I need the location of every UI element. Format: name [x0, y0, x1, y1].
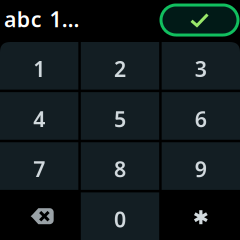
- button[interactable]: Delete: [0, 192, 78, 240]
- button[interactable]: 4: [0, 92, 78, 140]
- staticText: 8: [114, 155, 126, 183]
- staticText: 4: [33, 105, 45, 133]
- button[interactable]: Confirm: [161, 6, 238, 36]
- button[interactable]: 1: [0, 42, 78, 90]
- button[interactable]: 0: [81, 192, 159, 240]
- staticText: 1: [33, 55, 45, 83]
- staticText: 7: [33, 155, 45, 183]
- button[interactable]: 3: [162, 42, 240, 90]
- button[interactable]: 7: [0, 142, 78, 190]
- button[interactable]: 9: [162, 142, 240, 190]
- staticText: 9: [195, 155, 207, 183]
- staticText: 6: [195, 105, 207, 133]
- button[interactable]: 6: [162, 92, 240, 140]
- button[interactable]: Asterisk: [162, 192, 240, 240]
- staticText: 3: [195, 55, 207, 83]
- button[interactable]: 8: [81, 142, 159, 190]
- staticText: 0: [114, 205, 126, 233]
- button[interactable]: 2: [81, 42, 159, 90]
- staticText: abc 123: [4, 5, 86, 33]
- staticText: 5: [114, 105, 126, 133]
- staticText: 2: [114, 55, 126, 83]
- button[interactable]: 5: [81, 92, 159, 140]
